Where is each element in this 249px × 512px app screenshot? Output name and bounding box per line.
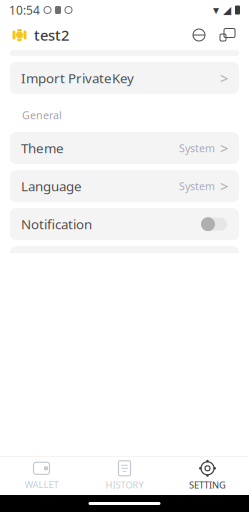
staticText: Privacy Policy bbox=[21, 475, 103, 493]
staticText: HISTORY bbox=[105, 479, 143, 491]
staticText: Import PrivateKey bbox=[21, 69, 134, 87]
button[interactable]: Notification bbox=[10, 208, 239, 240]
button[interactable]: App Lock bbox=[10, 246, 239, 278]
staticText: > bbox=[220, 176, 228, 196]
staticText: > bbox=[220, 138, 228, 158]
button[interactable]: WALLET bbox=[0, 457, 83, 495]
staticText: System bbox=[179, 179, 215, 193]
staticText: ▾ bbox=[213, 3, 219, 17]
staticText: System bbox=[179, 141, 215, 155]
staticText: Language bbox=[21, 177, 82, 195]
button[interactable]: Network bbox=[188, 24, 210, 46]
button[interactable]: Privacy Policy bbox=[10, 468, 239, 500]
button[interactable]: Language bbox=[10, 170, 239, 202]
staticText: 10:54 bbox=[9, 2, 40, 18]
staticText: > bbox=[220, 68, 228, 88]
button[interactable]: Import PrivateKey bbox=[10, 62, 239, 94]
button[interactable]: HISTORY bbox=[83, 457, 166, 495]
staticText: WALLET bbox=[24, 478, 58, 491]
button[interactable]: Connect bbox=[216, 24, 238, 46]
button[interactable]: Term bbox=[10, 430, 239, 462]
staticText: SETTING bbox=[189, 479, 226, 491]
button[interactable]: Theme bbox=[10, 132, 239, 164]
staticText: test2 bbox=[34, 25, 69, 45]
staticText: > bbox=[220, 475, 228, 494]
button[interactable]: SETTING bbox=[166, 457, 249, 495]
staticText: Theme bbox=[21, 139, 64, 157]
staticText: General bbox=[22, 108, 62, 122]
staticText: ◢ bbox=[223, 4, 231, 16]
staticText: Notification bbox=[21, 215, 92, 233]
